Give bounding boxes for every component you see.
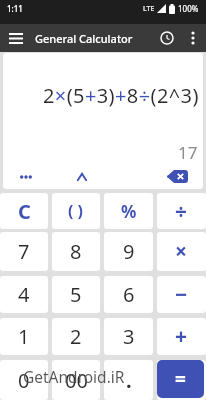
staticText: General Calculator <box>35 31 133 46</box>
staticText: = <box>175 366 186 392</box>
button[interactable]: 8 <box>52 232 100 271</box>
button[interactable]: = <box>157 360 204 398</box>
button[interactable]: 0 <box>0 360 48 400</box>
staticText: LTE <box>143 4 155 14</box>
button[interactable]: 2 <box>52 318 100 355</box>
button[interactable]: + <box>157 318 206 355</box>
button[interactable]: 1 <box>0 318 48 355</box>
button[interactable]: 9 <box>104 232 153 271</box>
button[interactable] <box>180 24 206 52</box>
staticText: % <box>121 200 137 223</box>
staticText: 7 <box>18 238 30 265</box>
staticText: 100% <box>178 3 199 14</box>
button[interactable]: × <box>157 232 206 271</box>
button[interactable]: ( ) <box>52 193 100 229</box>
staticText: 0 <box>18 367 30 394</box>
staticText: C <box>18 198 31 225</box>
button[interactable]: − <box>157 276 206 313</box>
button[interactable]: 6 <box>104 276 153 313</box>
staticText: 8 <box>70 238 82 265</box>
staticText: 1 <box>18 323 30 350</box>
button[interactable] <box>3 164 49 189</box>
staticText: 9 <box>123 238 135 265</box>
button[interactable] <box>153 24 180 52</box>
staticText: 6 <box>123 281 135 308</box>
staticText: × <box>175 237 188 266</box>
staticText: 00 <box>65 367 88 394</box>
staticText: − <box>175 280 188 309</box>
staticText: GetAndroid.iR <box>23 366 125 387</box>
staticText: 3 <box>123 323 135 350</box>
staticText: ( ) <box>68 200 84 222</box>
button[interactable]: C <box>0 193 48 229</box>
button[interactable]: ÷ <box>157 193 206 229</box>
button[interactable] <box>153 164 203 189</box>
staticText: ÷ <box>175 197 188 226</box>
staticText: 4 <box>18 281 30 308</box>
button[interactable]: 4 <box>0 276 48 313</box>
button[interactable]: 3 <box>104 318 153 355</box>
button[interactable]: 5 <box>52 276 100 313</box>
staticText: 2 <box>70 323 82 350</box>
button[interactable]: . <box>104 360 153 400</box>
button[interactable]: % <box>104 193 153 229</box>
button[interactable]: 00 <box>52 360 100 400</box>
staticText: . <box>126 367 132 394</box>
button[interactable] <box>49 164 115 189</box>
button[interactable]: 7 <box>0 232 48 271</box>
staticText: + <box>175 322 188 351</box>
staticText: 17 <box>178 141 198 164</box>
button[interactable]: = <box>157 360 206 400</box>
button[interactable] <box>0 24 32 52</box>
staticText: 1:11 <box>7 3 23 14</box>
staticText: 2×(5+3)+8÷(2^3) <box>43 82 199 109</box>
staticText: 5 <box>70 281 82 308</box>
